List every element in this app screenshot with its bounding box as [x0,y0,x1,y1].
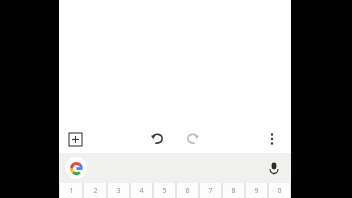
button[interactable]: 4 [131,183,152,198]
button[interactable]: 6 [177,183,198,198]
button[interactable]: 9 [246,183,267,198]
staticText: 6 [185,186,190,196]
button[interactable]: Insert [64,128,86,150]
button[interactable]: 1 [60,183,82,198]
staticText: 4 [139,186,144,196]
staticText: 8 [231,186,236,196]
button[interactable]: More options [261,128,283,150]
button[interactable]: Google search [65,157,87,179]
button[interactable]: 3 [108,183,129,198]
button[interactable]: 2 [84,183,106,198]
staticText: 3 [116,186,121,196]
button[interactable]: 8 [223,183,244,198]
button[interactable]: Redo [180,127,204,151]
staticText: 2 [93,186,98,196]
button[interactable]: 5 [154,183,175,198]
button[interactable]: 0 [269,183,290,198]
button[interactable]: Undo [146,127,170,151]
staticText: 1 [69,186,74,196]
button[interactable]: Voice input [263,157,285,179]
staticText: 9 [254,186,259,196]
staticText: 7 [208,186,213,196]
staticText: 0 [277,186,282,196]
staticText: 5 [162,186,167,196]
button[interactable]: 7 [200,183,221,198]
